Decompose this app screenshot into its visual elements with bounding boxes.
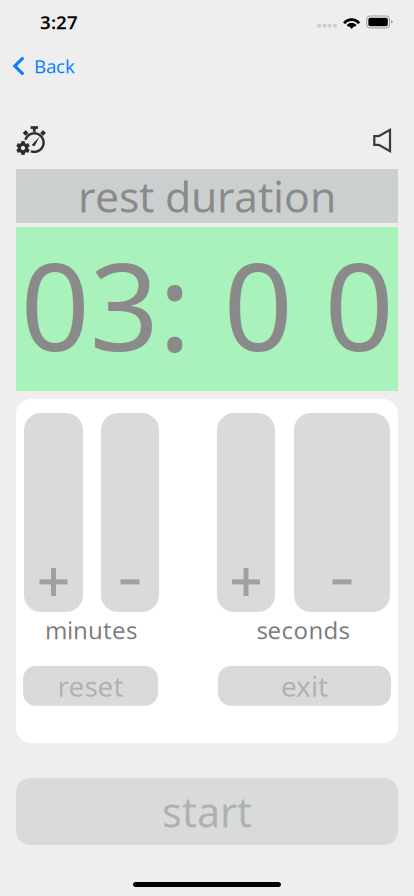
- button[interactable]: reset: [23, 666, 158, 706]
- button[interactable]: Add minute: [24, 413, 83, 612]
- staticText: rest duration: [78, 168, 336, 224]
- staticText: 03: 0 0: [20, 223, 393, 384]
- button[interactable]: Timer settings: [16, 126, 45, 155]
- staticText: reset: [57, 667, 123, 704]
- staticText: start: [162, 784, 252, 839]
- staticText: minutes: [45, 614, 137, 646]
- button[interactable]: Add second: [217, 413, 275, 612]
- staticText: exit: [281, 667, 328, 704]
- button[interactable]: Subtract minute: [101, 413, 159, 612]
- button[interactable]: start: [0, 778, 414, 845]
- button[interactable]: Sound: [373, 128, 392, 152]
- staticText: Back: [34, 54, 75, 78]
- button[interactable]: exit: [218, 666, 391, 706]
- staticText: 3:27: [40, 10, 78, 34]
- button[interactable]: Subtract second: [294, 413, 390, 612]
- button[interactable]: Back: [0, 44, 89, 88]
- staticText: seconds: [256, 614, 349, 646]
